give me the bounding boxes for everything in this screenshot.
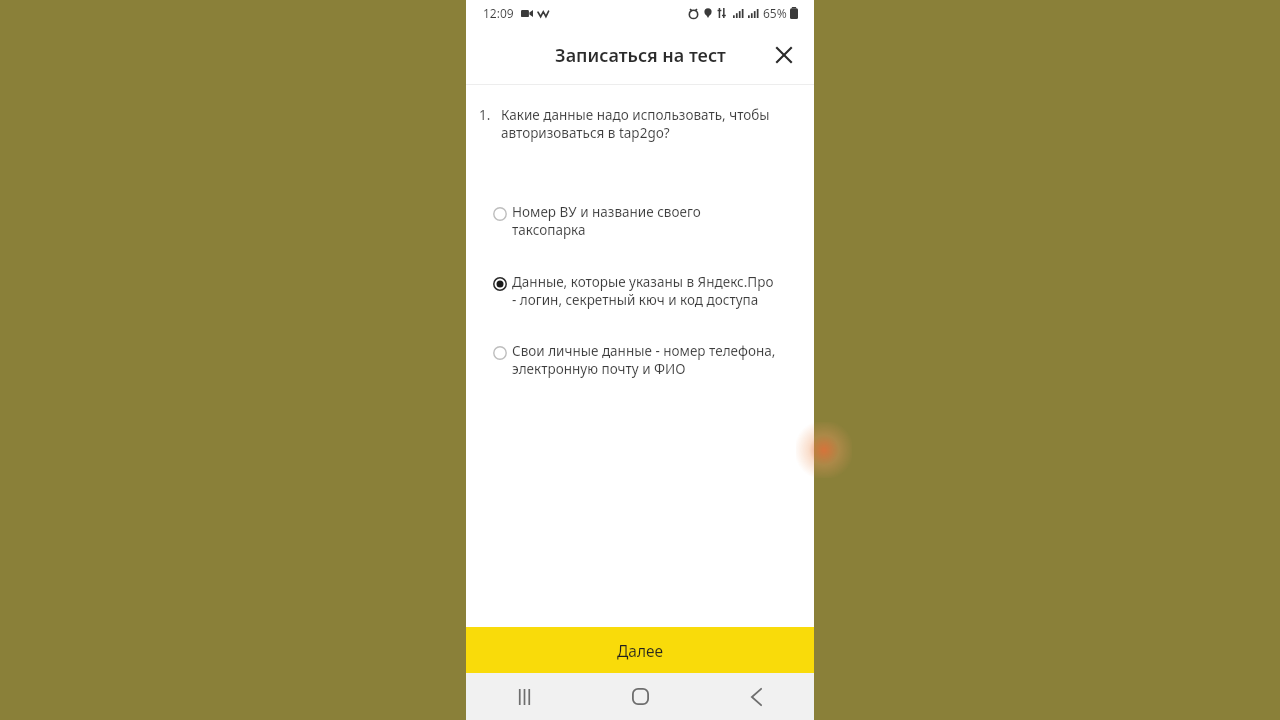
- button[interactable]: Главный экран: [582, 673, 698, 720]
- staticText: Данные, которые указаны в Яндекс.Про: [512, 273, 774, 291]
- button[interactable]: Закрыть: [764, 35, 804, 75]
- staticText: Далее: [617, 640, 664, 661]
- staticText: 12:09: [483, 5, 514, 21]
- button[interactable]: Свои личные данные - номер телефона,: [466, 340, 814, 380]
- staticText: авторизоваться в tap2go?: [501, 124, 670, 142]
- button[interactable]: Данные, которые указаны в Яндекс.Про: [466, 271, 814, 311]
- button[interactable]: Номер ВУ и название своего: [466, 201, 814, 241]
- staticText: электронную почту и ФИО: [512, 360, 686, 378]
- staticText: 65%: [763, 5, 787, 21]
- button[interactable]: Последние приложения: [466, 673, 582, 720]
- staticText: Номер ВУ и название своего: [512, 203, 701, 221]
- staticText: таксопарка: [512, 221, 586, 239]
- staticText: Записаться на тест: [555, 43, 726, 68]
- button[interactable]: Назад: [698, 673, 814, 720]
- staticText: Какие данные надо использовать, чтобы: [501, 106, 770, 124]
- staticText: Свои личные данные - номер телефона,: [512, 342, 776, 360]
- staticText: - логин, секретный кюч и код доступа: [512, 291, 759, 309]
- button[interactable]: Далее: [466, 627, 814, 673]
- staticText: 1.: [479, 106, 501, 124]
